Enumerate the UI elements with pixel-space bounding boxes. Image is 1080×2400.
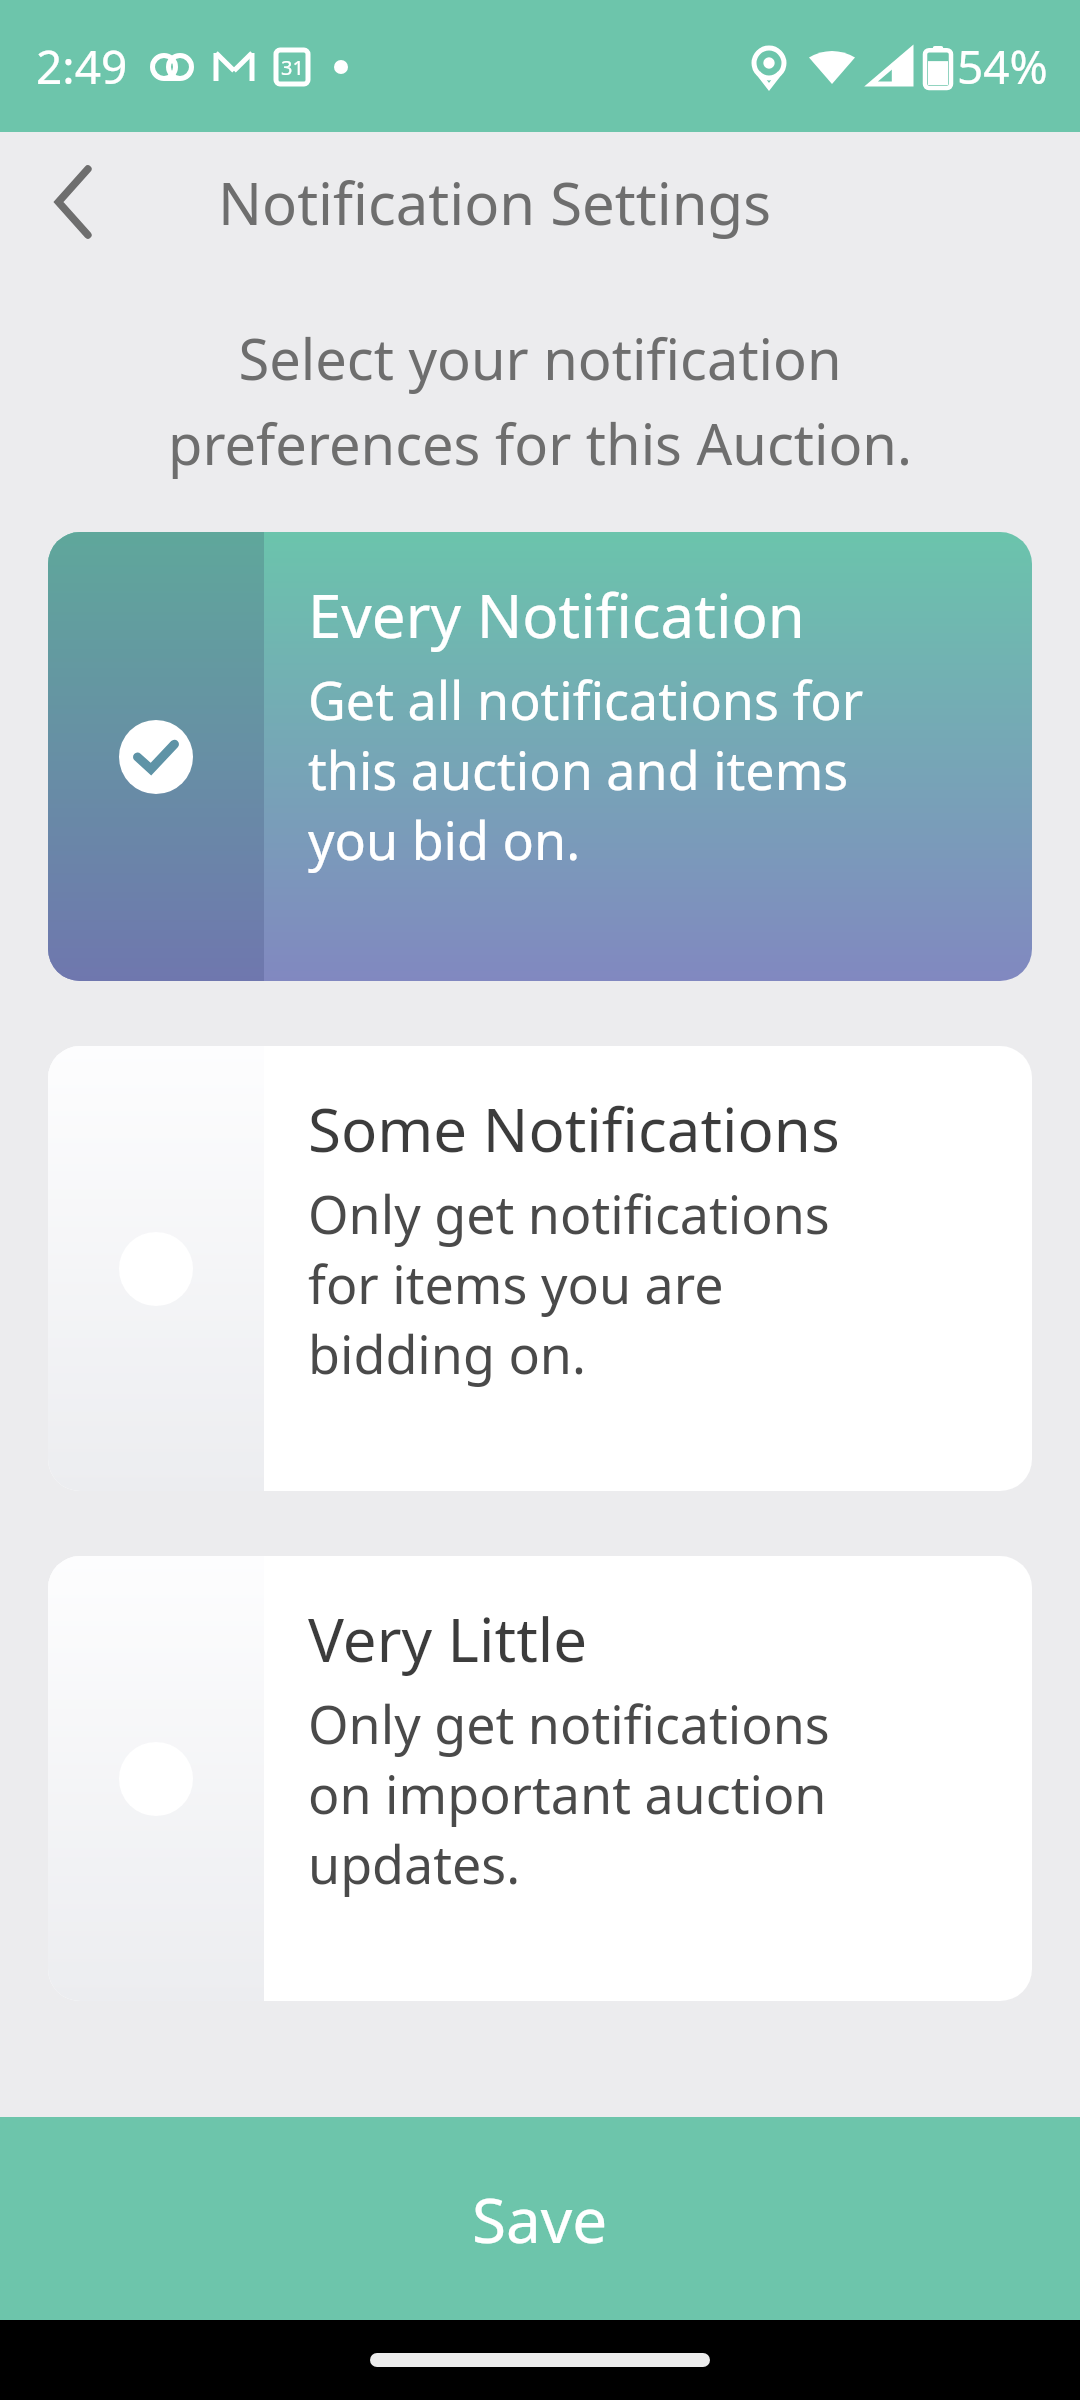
staticText: Only get notifications on important auct… [308,1688,830,1899]
staticText: Some Notifications [308,1088,840,1170]
staticText: 54% [957,35,1048,98]
button[interactable]: Save [0,2117,1080,2320]
button[interactable]: Very Little [48,1556,1032,2001]
staticText: Very Little [308,1598,588,1680]
staticText: Only get notifications for items you are… [308,1178,830,1389]
staticText: Get all notifications for this auction a… [308,664,864,875]
staticText: Save [472,2177,608,2261]
staticText: Notification Settings [218,163,771,242]
button[interactable]: Some Notifications [48,1046,1032,1491]
staticText: Every Notification [308,574,805,656]
staticText: 2:49 [36,35,128,98]
button[interactable]: Back [30,157,120,247]
staticText: Select your notification preferences for… [24,320,1056,482]
staticText: 31 [281,54,304,81]
button[interactable]: Every Notification [48,532,1032,981]
